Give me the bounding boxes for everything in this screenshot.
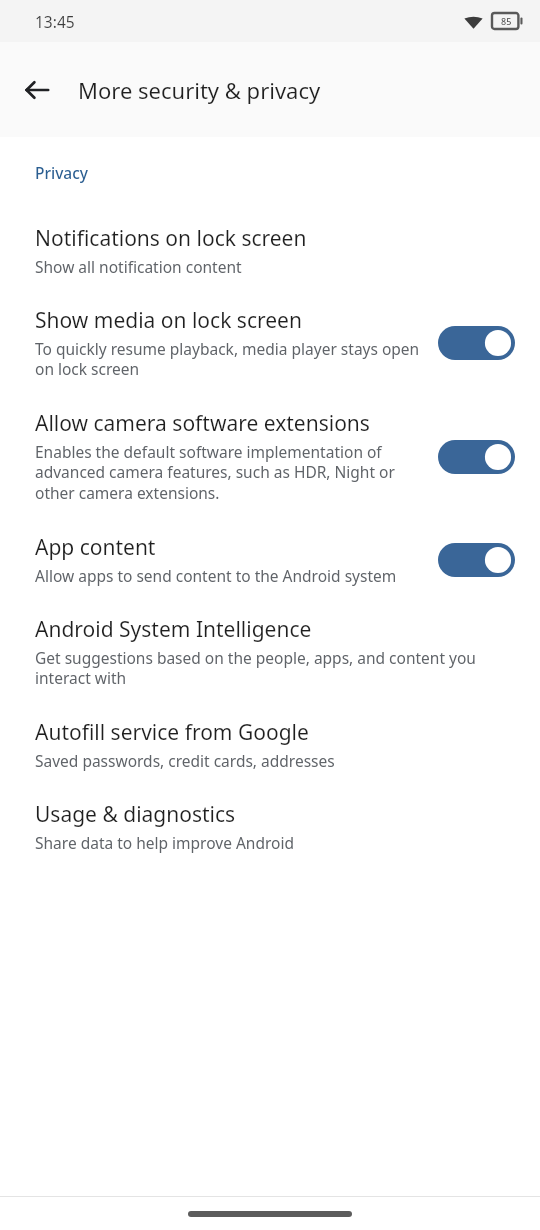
- staticText: Share data to help improve Android: [35, 832, 294, 853]
- staticText: Show media on lock screen: [35, 306, 302, 335]
- button[interactable]: Android System Intelligence: [0, 601, 540, 704]
- staticText: More security & privacy: [78, 75, 321, 105]
- staticText: 85: [501, 15, 512, 27]
- staticText: Allow camera software extensions: [35, 409, 370, 438]
- staticText: Notifications on lock screen: [35, 224, 307, 253]
- staticText: Get suggestions based on the people, app…: [35, 647, 493, 689]
- staticText: Privacy: [35, 162, 89, 183]
- button[interactable]: Allow camera software extensions: [0, 395, 540, 519]
- button[interactable]: Toggle App content: [438, 540, 515, 580]
- staticText: Usage & diagnostics: [35, 800, 236, 829]
- button[interactable]: App content: [0, 519, 540, 601]
- staticText: Enables the default software implementat…: [35, 441, 422, 504]
- staticText: App content: [35, 533, 156, 562]
- staticText: Saved passwords, credit cards, addresses: [35, 750, 335, 771]
- staticText: Autofill service from Google: [35, 718, 309, 747]
- button[interactable]: Back: [13, 66, 61, 114]
- button[interactable]: Toggle Show media on lock screen: [438, 323, 515, 363]
- staticText: To quickly resume playback, media player…: [35, 338, 422, 380]
- button[interactable]: Usage & diagnostics: [0, 786, 540, 868]
- button[interactable]: Toggle Allow camera software extensions: [438, 437, 515, 477]
- staticText: Show all notification content: [35, 256, 242, 277]
- staticText: 13:45: [35, 11, 75, 32]
- staticText: Allow apps to send content to the Androi…: [35, 565, 397, 586]
- button[interactable]: Show media on lock screen: [0, 292, 540, 395]
- button[interactable]: Autofill service from Google: [0, 704, 540, 786]
- staticText: Android System Intelligence: [35, 615, 312, 644]
- button[interactable]: Notifications on lock screen: [0, 210, 540, 292]
